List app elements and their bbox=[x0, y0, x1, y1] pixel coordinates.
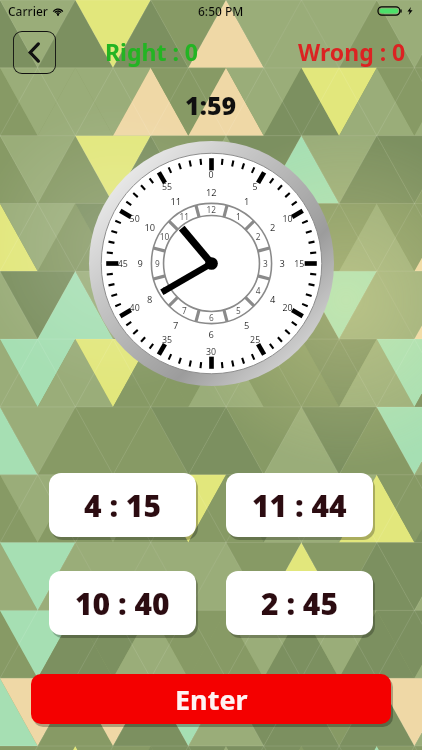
button[interactable]: Enter bbox=[31, 674, 391, 724]
staticText: 1:59 bbox=[185, 88, 237, 122]
staticText: 6:50 PM bbox=[198, 3, 244, 19]
button[interactable]: 11 : 44 bbox=[226, 473, 373, 537]
staticText: Right : 0 bbox=[105, 36, 199, 67]
staticText: 11 : 44 bbox=[252, 485, 347, 526]
staticText: 2 : 45 bbox=[261, 583, 339, 624]
button[interactable]: 4 : 15 bbox=[49, 473, 196, 537]
button[interactable]: Back bbox=[13, 31, 56, 74]
staticText: Carrier bbox=[8, 3, 48, 19]
staticText: 10 : 40 bbox=[75, 583, 170, 624]
staticText: 4 : 15 bbox=[84, 485, 162, 526]
button[interactable]: 2 : 45 bbox=[226, 571, 373, 635]
staticText: Enter bbox=[175, 681, 248, 718]
button[interactable]: 10 : 40 bbox=[49, 571, 196, 635]
staticText: Wrong : 0 bbox=[298, 36, 406, 67]
